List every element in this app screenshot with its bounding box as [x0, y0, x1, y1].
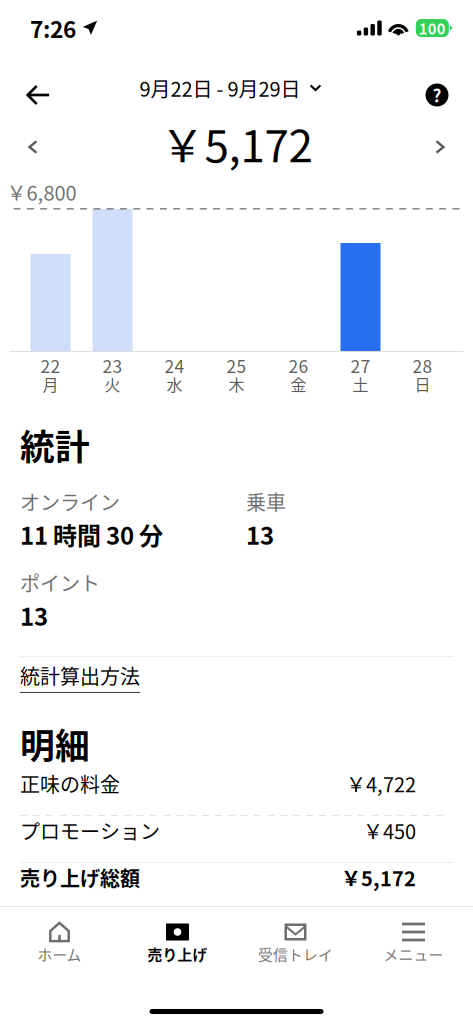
staticText: ￥5,172 — [341, 863, 416, 892]
staticText: 月 — [42, 372, 58, 396]
button[interactable]: 統計算出方法 — [20, 657, 140, 699]
button[interactable]: 売り上げ — [118, 907, 236, 965]
staticText: 26 — [288, 353, 308, 378]
button[interactable]: 受信トレイ — [236, 907, 354, 965]
staticText: 受信トレイ — [258, 943, 333, 965]
button[interactable]: 9月22日 - 9月29日 — [131, 68, 329, 108]
button[interactable]: ホーム — [0, 907, 118, 965]
button[interactable]: Previous week — [9, 123, 57, 171]
staticText: 23 — [102, 353, 122, 378]
staticText: 正味の料金 — [20, 769, 120, 798]
staticText: ￥6,800 — [6, 177, 76, 206]
staticText: 木 — [228, 372, 244, 396]
button[interactable]: Back — [16, 73, 60, 117]
staticText: 13 — [20, 598, 48, 633]
staticText: 27 — [350, 353, 370, 378]
staticText: 28 — [412, 353, 432, 378]
staticText: 売り上げ総額 — [20, 863, 140, 892]
staticText: ポイント — [20, 568, 100, 597]
staticText: ? — [432, 82, 441, 108]
staticText: 日 — [414, 372, 430, 396]
staticText: 統計算出方法 — [20, 661, 140, 690]
staticText: 火 — [104, 372, 120, 396]
staticText: 金 — [290, 372, 306, 396]
staticText: 乗車 — [246, 487, 286, 516]
button[interactable]: Help — [415, 73, 459, 117]
staticText: 土 — [352, 372, 368, 396]
staticText: 24 — [164, 353, 184, 378]
staticText: 11 時間 30 分 — [20, 517, 163, 552]
button[interactable]: Next week — [416, 123, 464, 171]
staticText: ￥4,722 — [346, 769, 416, 798]
staticText: ￥450 — [363, 816, 416, 845]
staticText: 100 — [419, 17, 446, 39]
staticText: 統計 — [20, 420, 90, 470]
staticText: メニュー — [383, 943, 443, 965]
staticText: 9月22日 - 9月29日 — [139, 73, 300, 102]
staticText: 明細 — [20, 719, 90, 769]
staticText: オンライン — [20, 487, 120, 516]
staticText: プロモーション — [20, 816, 160, 845]
staticText: ￥5,172 — [160, 111, 312, 175]
staticText: 売り上げ — [147, 943, 207, 965]
staticText: 25 — [226, 353, 246, 378]
staticText: 13 — [246, 517, 274, 552]
staticText: ホーム — [37, 943, 81, 965]
staticText: 水 — [166, 372, 182, 396]
staticText: 22 — [40, 353, 60, 378]
button[interactable]: メニュー — [354, 907, 472, 965]
staticText: 7:26 — [30, 12, 76, 44]
